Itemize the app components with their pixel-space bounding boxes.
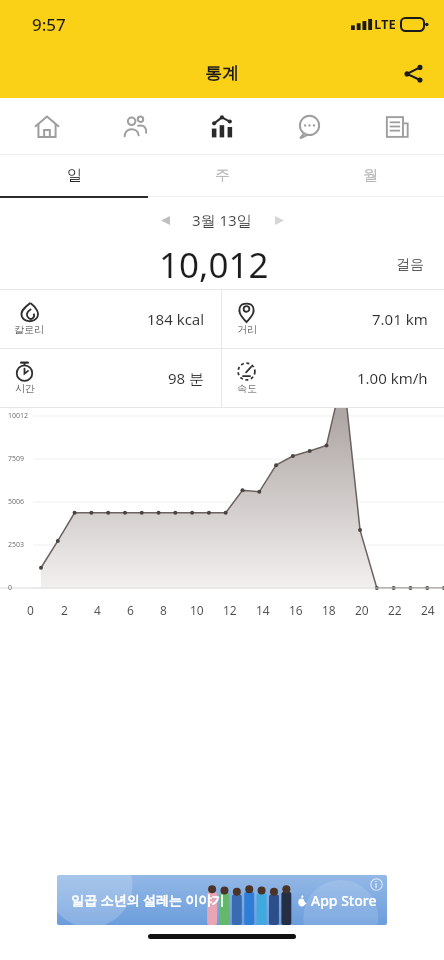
- staticText: 16: [289, 602, 303, 618]
- staticText: 8: [160, 602, 167, 618]
- staticText: 일곱 소년의 설레는 이야기: [71, 891, 225, 909]
- staticText: 10,012: [159, 241, 269, 289]
- staticText: 14: [256, 602, 270, 618]
- staticText: 22: [388, 602, 402, 618]
- staticText: 10012: [8, 411, 29, 421]
- button[interactable]: Share: [394, 54, 432, 92]
- button[interactable]: 일: [0, 155, 148, 196]
- button[interactable]: 주: [148, 155, 296, 196]
- staticText: 7.01 km: [372, 309, 428, 329]
- staticText: 184 kcal: [147, 309, 205, 329]
- staticText: 18: [322, 602, 336, 618]
- staticText: 걸음: [396, 256, 424, 274]
- staticText: 0: [8, 583, 13, 593]
- staticText: 4: [94, 602, 101, 618]
- button[interactable]: 월: [296, 155, 444, 196]
- button[interactable]: Home: [7, 98, 87, 155]
- button[interactable]: News: [357, 98, 437, 155]
- staticText: 5006: [8, 497, 25, 507]
- staticText: 9:57: [32, 13, 66, 36]
- button[interactable]: Friends: [95, 98, 175, 155]
- staticText: 월: [363, 166, 378, 185]
- staticText: 속도: [237, 382, 257, 395]
- staticText: 12: [223, 602, 237, 618]
- staticText: 10: [190, 602, 204, 618]
- button[interactable]: Previous day: [150, 205, 180, 235]
- staticText: 6: [127, 602, 134, 618]
- button[interactable]: 시간: [0, 349, 221, 407]
- staticText: 7509: [8, 454, 25, 464]
- staticText: LTE: [374, 15, 396, 33]
- staticText: i: [375, 879, 378, 890]
- button[interactable]: Advertisement: [57, 875, 387, 925]
- staticText: 0: [27, 602, 34, 618]
- staticText: 24: [421, 602, 435, 618]
- staticText: 거리: [237, 323, 257, 336]
- staticText: 통계: [205, 63, 239, 84]
- staticText: 일: [67, 166, 82, 185]
- staticText: 98 분: [168, 368, 205, 388]
- staticText: 20: [355, 602, 369, 618]
- button[interactable]: Next day: [264, 205, 294, 235]
- staticText: 2: [61, 602, 68, 618]
- staticText: 시간: [15, 382, 35, 395]
- button[interactable]: Chat: [269, 98, 349, 155]
- staticText: 칼로리: [14, 323, 44, 336]
- staticText: 3월 13일: [192, 210, 252, 230]
- staticText: App Store: [311, 891, 377, 910]
- button[interactable]: 칼로리: [0, 290, 221, 348]
- staticText: 2503: [8, 540, 25, 550]
- button[interactable]: Statistics: [182, 98, 262, 155]
- button[interactable]: 속도: [222, 349, 444, 407]
- button[interactable]: 거리: [222, 290, 444, 348]
- staticText: 1.00 km/h: [357, 368, 428, 388]
- staticText: 주: [215, 166, 230, 185]
